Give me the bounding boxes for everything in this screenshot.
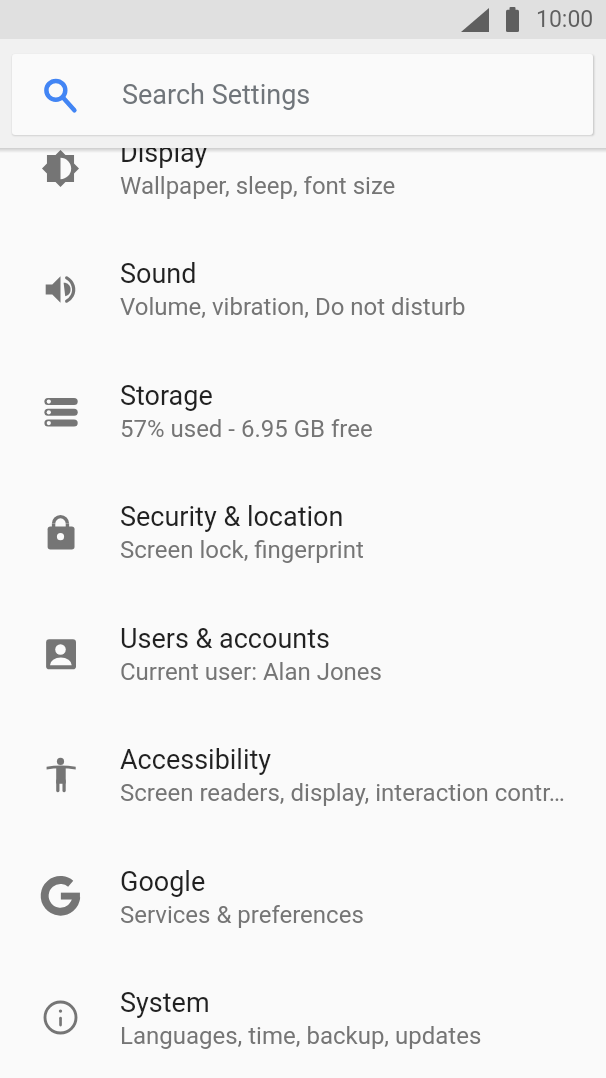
- button[interactable]: Security & location: [0, 471, 606, 593]
- staticText: Current user: Alan Jones: [120, 658, 382, 686]
- button[interactable]: Search: [12, 54, 593, 135]
- other: Signal strength: [461, 8, 489, 32]
- button[interactable]: Accessibility: [0, 714, 606, 836]
- staticText: Sound: [120, 258, 197, 290]
- staticText: 57% used - 6.95 GB free: [120, 415, 373, 443]
- staticText: 10:00: [536, 6, 594, 33]
- staticText: Wallpaper, sleep, font size: [120, 172, 396, 200]
- staticText: Display: [120, 137, 208, 169]
- button[interactable]: Users & accounts: [0, 593, 606, 715]
- button[interactable]: Google: [0, 836, 606, 958]
- staticText: Google: [120, 866, 206, 898]
- button[interactable]: System: [0, 957, 606, 1078]
- button[interactable]: Display: [0, 107, 606, 229]
- staticText: Accessibility: [120, 744, 272, 776]
- other: Search: [44, 79, 76, 111]
- staticText: Languages, time, backup, updates: [120, 1022, 482, 1050]
- button[interactable]: Storage: [0, 350, 606, 472]
- button[interactable]: Sound: [0, 228, 606, 350]
- staticText: Volume, vibration, Do not disturb: [120, 293, 466, 321]
- staticText: Security & location: [120, 501, 344, 533]
- staticText: System: [120, 987, 210, 1019]
- staticText: Storage: [120, 380, 213, 412]
- staticText: Users & accounts: [120, 623, 330, 655]
- other: Battery: [506, 7, 519, 32]
- staticText: Services & preferences: [120, 901, 364, 929]
- staticText: Screen lock, fingerprint: [120, 536, 364, 564]
- staticText: Screen readers, display, interaction con…: [120, 779, 565, 807]
- staticText: Search Settings: [122, 79, 311, 111]
